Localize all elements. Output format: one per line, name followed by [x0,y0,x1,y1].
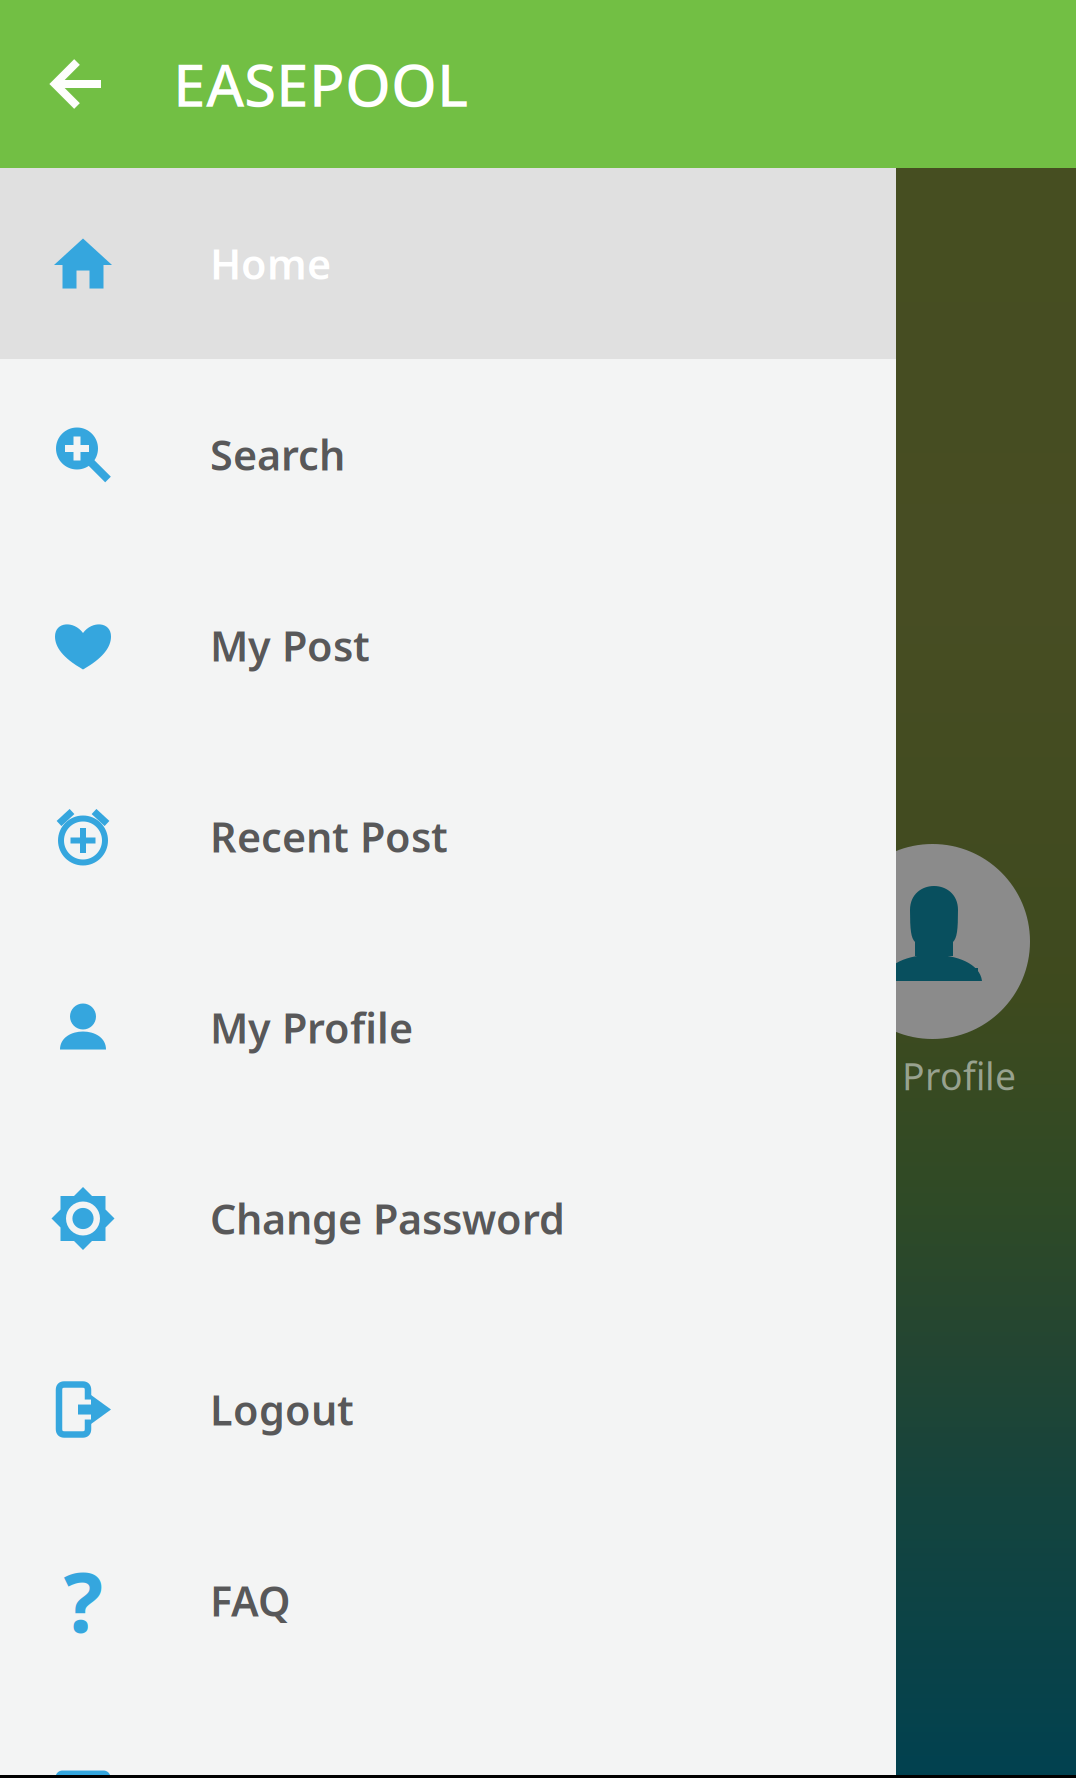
button[interactable]: Change Password [0,1123,896,1314]
button[interactable]: My Profile [0,932,896,1123]
staticText: My Profile [839,1051,1016,1101]
staticText: Change Password [210,1191,565,1246]
staticText: EASEPOOL [173,45,468,123]
staticText: ? [63,1546,102,1655]
staticText: Search [210,427,345,482]
button[interactable]: My Post [0,550,896,741]
button[interactable]: Recent Post [0,741,896,932]
button[interactable]: ? [0,1505,896,1696]
staticText: My Profile [210,1000,413,1055]
staticText: Home [210,236,331,291]
button[interactable]: Notification [0,1696,896,1778]
staticText: Recent Post [210,809,448,864]
button[interactable]: Search [0,359,896,550]
staticText: Logout [210,1382,354,1437]
button[interactable]: Home [0,168,896,359]
staticText: My Post [210,618,370,673]
staticText: Notification [210,1764,451,1778]
button[interactable]: Back [0,50,173,118]
button[interactable]: Logout [0,1314,896,1505]
staticText: FAQ [210,1573,291,1628]
